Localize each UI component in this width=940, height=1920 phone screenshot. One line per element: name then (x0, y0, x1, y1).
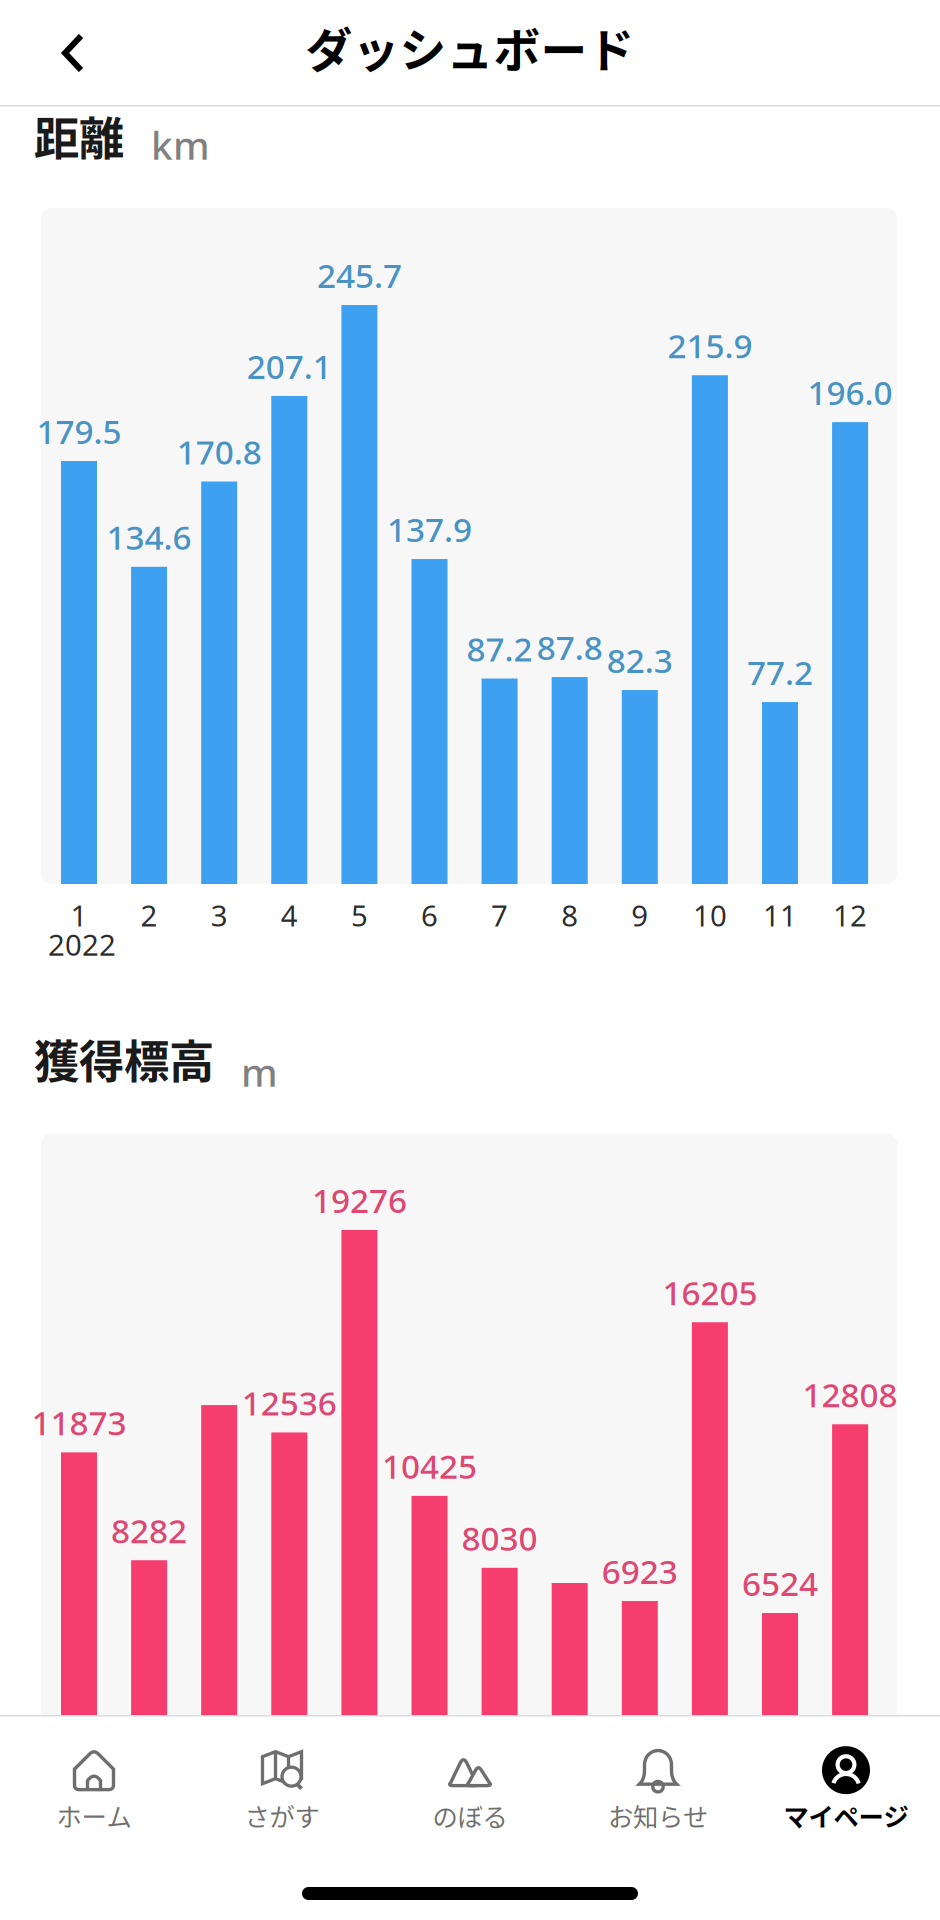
button[interactable]: ホーム (0, 1734, 188, 1846)
staticText: マイページ (783, 1797, 908, 1834)
button[interactable]: お知らせ (564, 1734, 752, 1846)
staticText: 215.9 (667, 323, 752, 367)
staticText: 6524 (742, 1561, 818, 1605)
staticText: 179.5 (36, 409, 121, 453)
staticText: 87.8 (537, 625, 603, 669)
staticText: 82.3 (607, 638, 673, 682)
staticText: 2022 (48, 925, 116, 964)
staticText: 11 (763, 895, 797, 934)
button[interactable]: Back (28, 8, 118, 98)
staticText: m (241, 1046, 278, 1097)
staticText: 7 (491, 895, 508, 934)
staticText: 10425 (382, 1444, 477, 1488)
staticText: 5 (351, 895, 368, 934)
staticText: のぼる (432, 1797, 507, 1834)
button[interactable]: のぼる (376, 1734, 564, 1846)
staticText: 16205 (662, 1270, 757, 1314)
staticText: 1 (70, 895, 87, 934)
staticText: 134.6 (107, 515, 192, 559)
staticText: お知らせ (608, 1797, 708, 1834)
staticText: 距離 (34, 103, 124, 169)
staticText: 12808 (803, 1372, 898, 1416)
staticText: 245.7 (317, 253, 402, 297)
staticText: km (151, 119, 210, 170)
button[interactable]: さがす (188, 1734, 376, 1846)
staticText: 19276 (312, 1178, 407, 1222)
staticText: さがす (244, 1797, 319, 1834)
staticText: 3 (211, 895, 228, 934)
staticText: 9 (631, 895, 648, 934)
staticText: ホーム (56, 1797, 131, 1834)
staticText: 170.8 (177, 429, 262, 474)
staticText: 87.2 (467, 626, 533, 671)
staticText: 196.0 (808, 370, 893, 414)
staticText: 207.1 (247, 344, 332, 388)
staticText: 6923 (602, 1549, 678, 1593)
staticText: 獲得標高 (34, 1026, 214, 1092)
staticText: 137.9 (387, 507, 472, 551)
staticText: 77.2 (747, 650, 813, 694)
staticText: 8030 (462, 1516, 538, 1560)
staticText: 2 (141, 895, 158, 934)
staticText: 10 (693, 895, 727, 934)
staticText: 11873 (31, 1400, 126, 1444)
staticText: 12 (833, 895, 867, 934)
staticText: ダッシュボード (305, 13, 634, 81)
staticText: 8 (561, 895, 578, 934)
staticText: 8282 (111, 1508, 187, 1552)
staticText: 4 (281, 895, 298, 934)
staticText: 12536 (242, 1380, 337, 1425)
staticText: 6 (421, 895, 438, 934)
button[interactable]: マイページ (752, 1734, 940, 1846)
